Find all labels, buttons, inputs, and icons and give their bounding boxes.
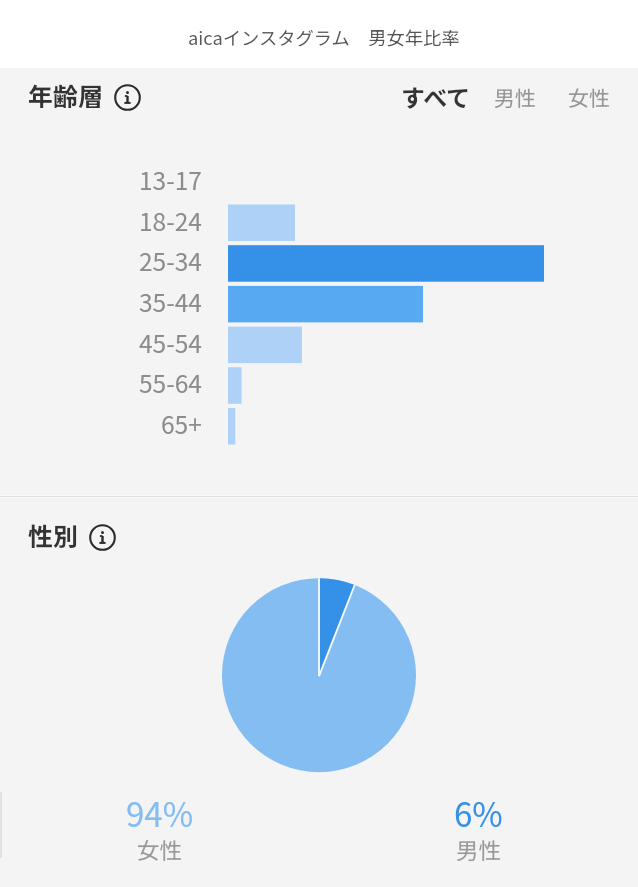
button[interactable]: 6% bbox=[319, 789, 638, 870]
button[interactable]: Info bbox=[114, 84, 141, 111]
button[interactable]: Info bbox=[89, 524, 116, 551]
button[interactable]: 男性 bbox=[494, 80, 536, 110]
staticText: aicaインスタグラム 男女年比率 bbox=[188, 24, 460, 50]
staticText: 13-17 bbox=[139, 162, 202, 197]
staticText: 女性 bbox=[568, 82, 610, 112]
staticText: 55-64 bbox=[139, 365, 202, 400]
staticText: 性別 bbox=[28, 517, 79, 553]
staticText: 45-54 bbox=[139, 325, 202, 360]
staticText: 年齢層 bbox=[28, 77, 104, 113]
staticText: 男性 bbox=[494, 82, 536, 112]
staticText: 女性 bbox=[137, 833, 183, 866]
staticText: 65+ bbox=[161, 406, 202, 441]
button[interactable]: すべて bbox=[401, 78, 471, 113]
button[interactable]: 女性 bbox=[568, 80, 610, 110]
staticText: 35-44 bbox=[139, 284, 202, 319]
button[interactable]: 94% bbox=[0, 789, 319, 870]
staticText: 18-24 bbox=[139, 203, 202, 238]
staticText: すべて bbox=[401, 79, 471, 114]
staticText: 94% bbox=[126, 789, 194, 837]
staticText: 25-34 bbox=[139, 243, 202, 278]
staticText: 6% bbox=[454, 789, 503, 837]
staticText: 男性 bbox=[456, 833, 502, 866]
